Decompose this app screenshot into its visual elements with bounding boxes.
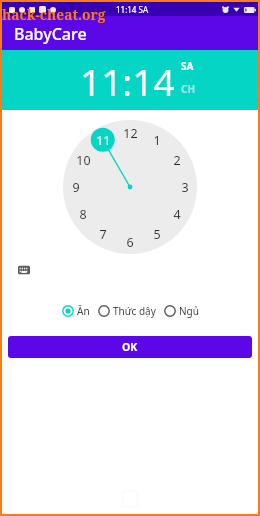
button[interactable]: CH (181, 82, 196, 96)
button[interactable]: 11:14 (80, 56, 175, 106)
button[interactable]: 5 (145, 222, 169, 246)
button[interactable]: 3 (173, 175, 197, 199)
button[interactable]: BabyCare (2, 16, 258, 50)
button[interactable]: 11 (91, 128, 115, 152)
button[interactable]: 6 (118, 230, 142, 254)
staticText: Ngủ (179, 304, 199, 318)
button[interactable]: 10 (71, 148, 95, 172)
staticText: 6 (126, 234, 134, 251)
button[interactable]: 1 (145, 128, 169, 152)
staticText: BabyCare (14, 23, 87, 45)
button[interactable]: 7 (91, 222, 115, 246)
staticText: 2 (173, 152, 181, 169)
button[interactable]: SA (181, 59, 194, 73)
button[interactable]: Switch to text input (18, 264, 30, 276)
staticText: Thức dậy (113, 304, 156, 318)
staticText: OK (122, 340, 138, 354)
staticText: 9 (72, 179, 80, 196)
staticText: Ăn (77, 304, 90, 318)
button[interactable]: 12 (118, 121, 142, 145)
button[interactable]: 4 (165, 202, 189, 226)
button[interactable]: Thức dậy (98, 304, 156, 318)
staticText: 12 (123, 125, 138, 142)
staticText: 4 (173, 206, 181, 223)
staticText: 11 (96, 132, 111, 149)
staticText: 5 (153, 226, 161, 243)
button[interactable]: 9 (64, 175, 88, 199)
button[interactable]: 2 (165, 148, 189, 172)
button[interactable]: OK (8, 336, 252, 358)
staticText: 11:14 SA (116, 4, 149, 15)
staticText: 7 (99, 226, 107, 243)
staticText: 1 (153, 132, 161, 149)
staticText: 10 (76, 152, 91, 169)
staticText: 8 (79, 206, 87, 223)
button[interactable]: Ăn (62, 304, 90, 318)
button[interactable]: 8 (71, 202, 95, 226)
staticText: hack-cheat.org (2, 5, 106, 24)
staticText: 3 (181, 179, 189, 196)
button[interactable]: Ngủ (164, 304, 199, 318)
